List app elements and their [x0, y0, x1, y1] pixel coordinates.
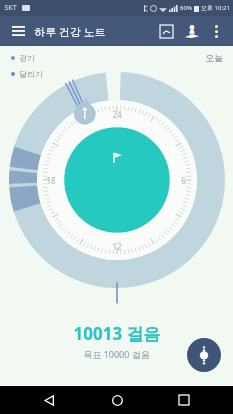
- button[interactable]: Back: [30, 386, 68, 414]
- staticText: 목표 10000 걸음: [83, 348, 150, 360]
- staticText: 오후 10:21: [201, 4, 230, 12]
- button[interactable]: More options: [205, 20, 227, 42]
- button[interactable]: Menu: [6, 19, 30, 43]
- staticText: 10013 걸음: [73, 322, 161, 345]
- button[interactable]: 오늘: [205, 52, 223, 63]
- button[interactable]: Recents: [165, 386, 203, 414]
- staticText: 12: [112, 241, 122, 252]
- staticText: SKT: [4, 3, 17, 13]
- button[interactable]: Home: [98, 386, 136, 414]
- button[interactable]: Chart: [153, 18, 179, 44]
- staticText: 60%: [180, 4, 192, 12]
- button[interactable]: Location: [179, 18, 205, 44]
- staticText: 18: [46, 175, 56, 186]
- staticText: 걷기: [19, 53, 35, 63]
- staticText: 24: [112, 109, 122, 120]
- staticText: 6: [181, 175, 186, 186]
- button[interactable]: Add record: [187, 338, 221, 372]
- staticText: 하루 건강 노트: [34, 24, 106, 39]
- staticText: 오늘: [205, 52, 223, 63]
- staticText: 달리기: [19, 69, 43, 79]
